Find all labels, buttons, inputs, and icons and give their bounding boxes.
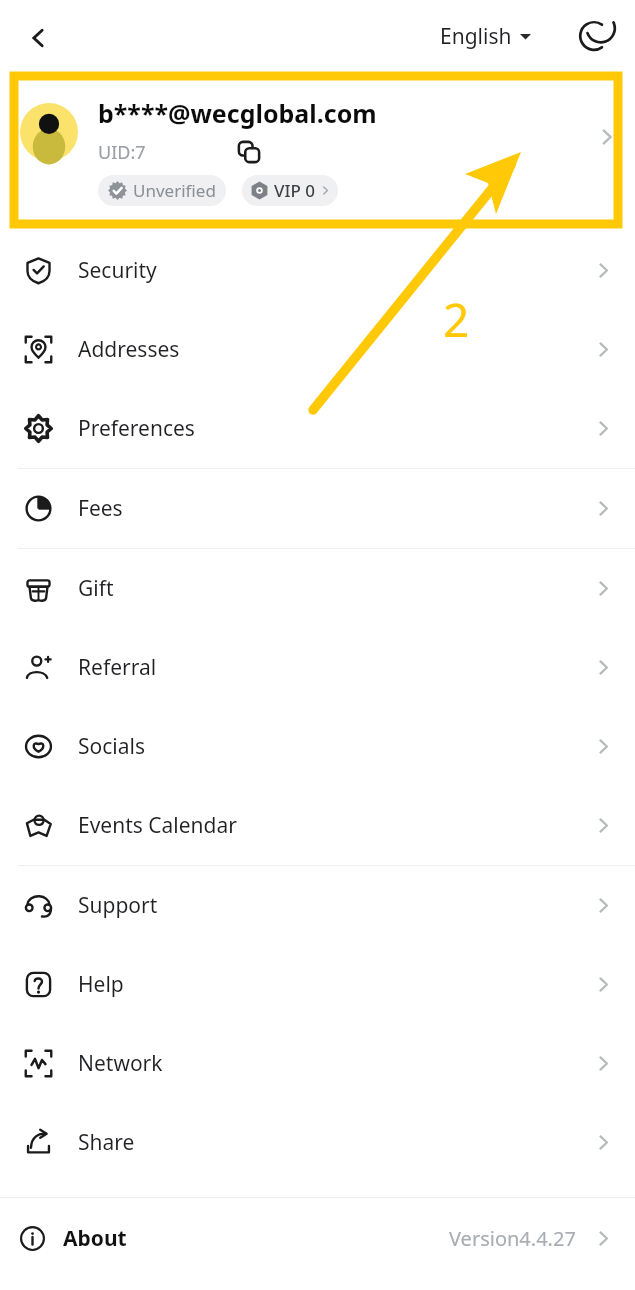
- staticText: Network: [78, 1049, 163, 1078]
- staticText: Preferences: [78, 414, 195, 443]
- staticText: Security: [78, 256, 157, 285]
- button[interactable]: English: [436, 16, 535, 57]
- staticText: Socials: [78, 732, 145, 761]
- button[interactable]: Share: [0, 1103, 635, 1182]
- staticText: b****@wecglobal.com: [98, 96, 377, 130]
- button[interactable]: Unverified: [98, 175, 226, 206]
- button[interactable]: Support: [0, 866, 635, 945]
- button[interactable]: Copy UID: [234, 137, 264, 167]
- button[interactable]: Gift: [0, 549, 635, 628]
- staticText: About: [63, 1224, 127, 1253]
- staticText: Referral: [78, 653, 157, 682]
- staticText: Share: [78, 1128, 135, 1157]
- staticText: Help: [78, 970, 124, 999]
- button[interactable]: Referral: [0, 628, 635, 707]
- button[interactable]: Fees: [0, 469, 635, 548]
- button[interactable]: Events Calendar: [0, 786, 635, 865]
- staticText: 2: [443, 288, 470, 351]
- staticText: Fees: [78, 494, 123, 523]
- staticText: Gift: [78, 574, 114, 603]
- staticText: UID:7: [98, 140, 146, 165]
- button[interactable]: Preferences: [0, 389, 635, 468]
- staticText: English: [440, 22, 512, 51]
- button[interactable]: Back: [14, 14, 62, 62]
- staticText: VIP 0: [274, 179, 315, 202]
- button[interactable]: Socials: [0, 707, 635, 786]
- button[interactable]: Help: [0, 945, 635, 1024]
- button[interactable]: Network: [0, 1024, 635, 1103]
- button[interactable]: About: [0, 1198, 635, 1278]
- staticText: Events Calendar: [78, 811, 237, 840]
- staticText: Version4.4.27: [449, 1225, 576, 1252]
- button[interactable]: VIP 0: [242, 175, 338, 206]
- button[interactable]: Dark mode: [570, 12, 618, 60]
- button[interactable]: b****@wecglobal.com: [0, 72, 635, 227]
- staticText: Support: [78, 891, 158, 920]
- button[interactable]: Security: [0, 231, 635, 310]
- button[interactable]: Addresses: [0, 310, 635, 389]
- staticText: Addresses: [78, 335, 180, 364]
- staticText: Unverified: [133, 179, 216, 202]
